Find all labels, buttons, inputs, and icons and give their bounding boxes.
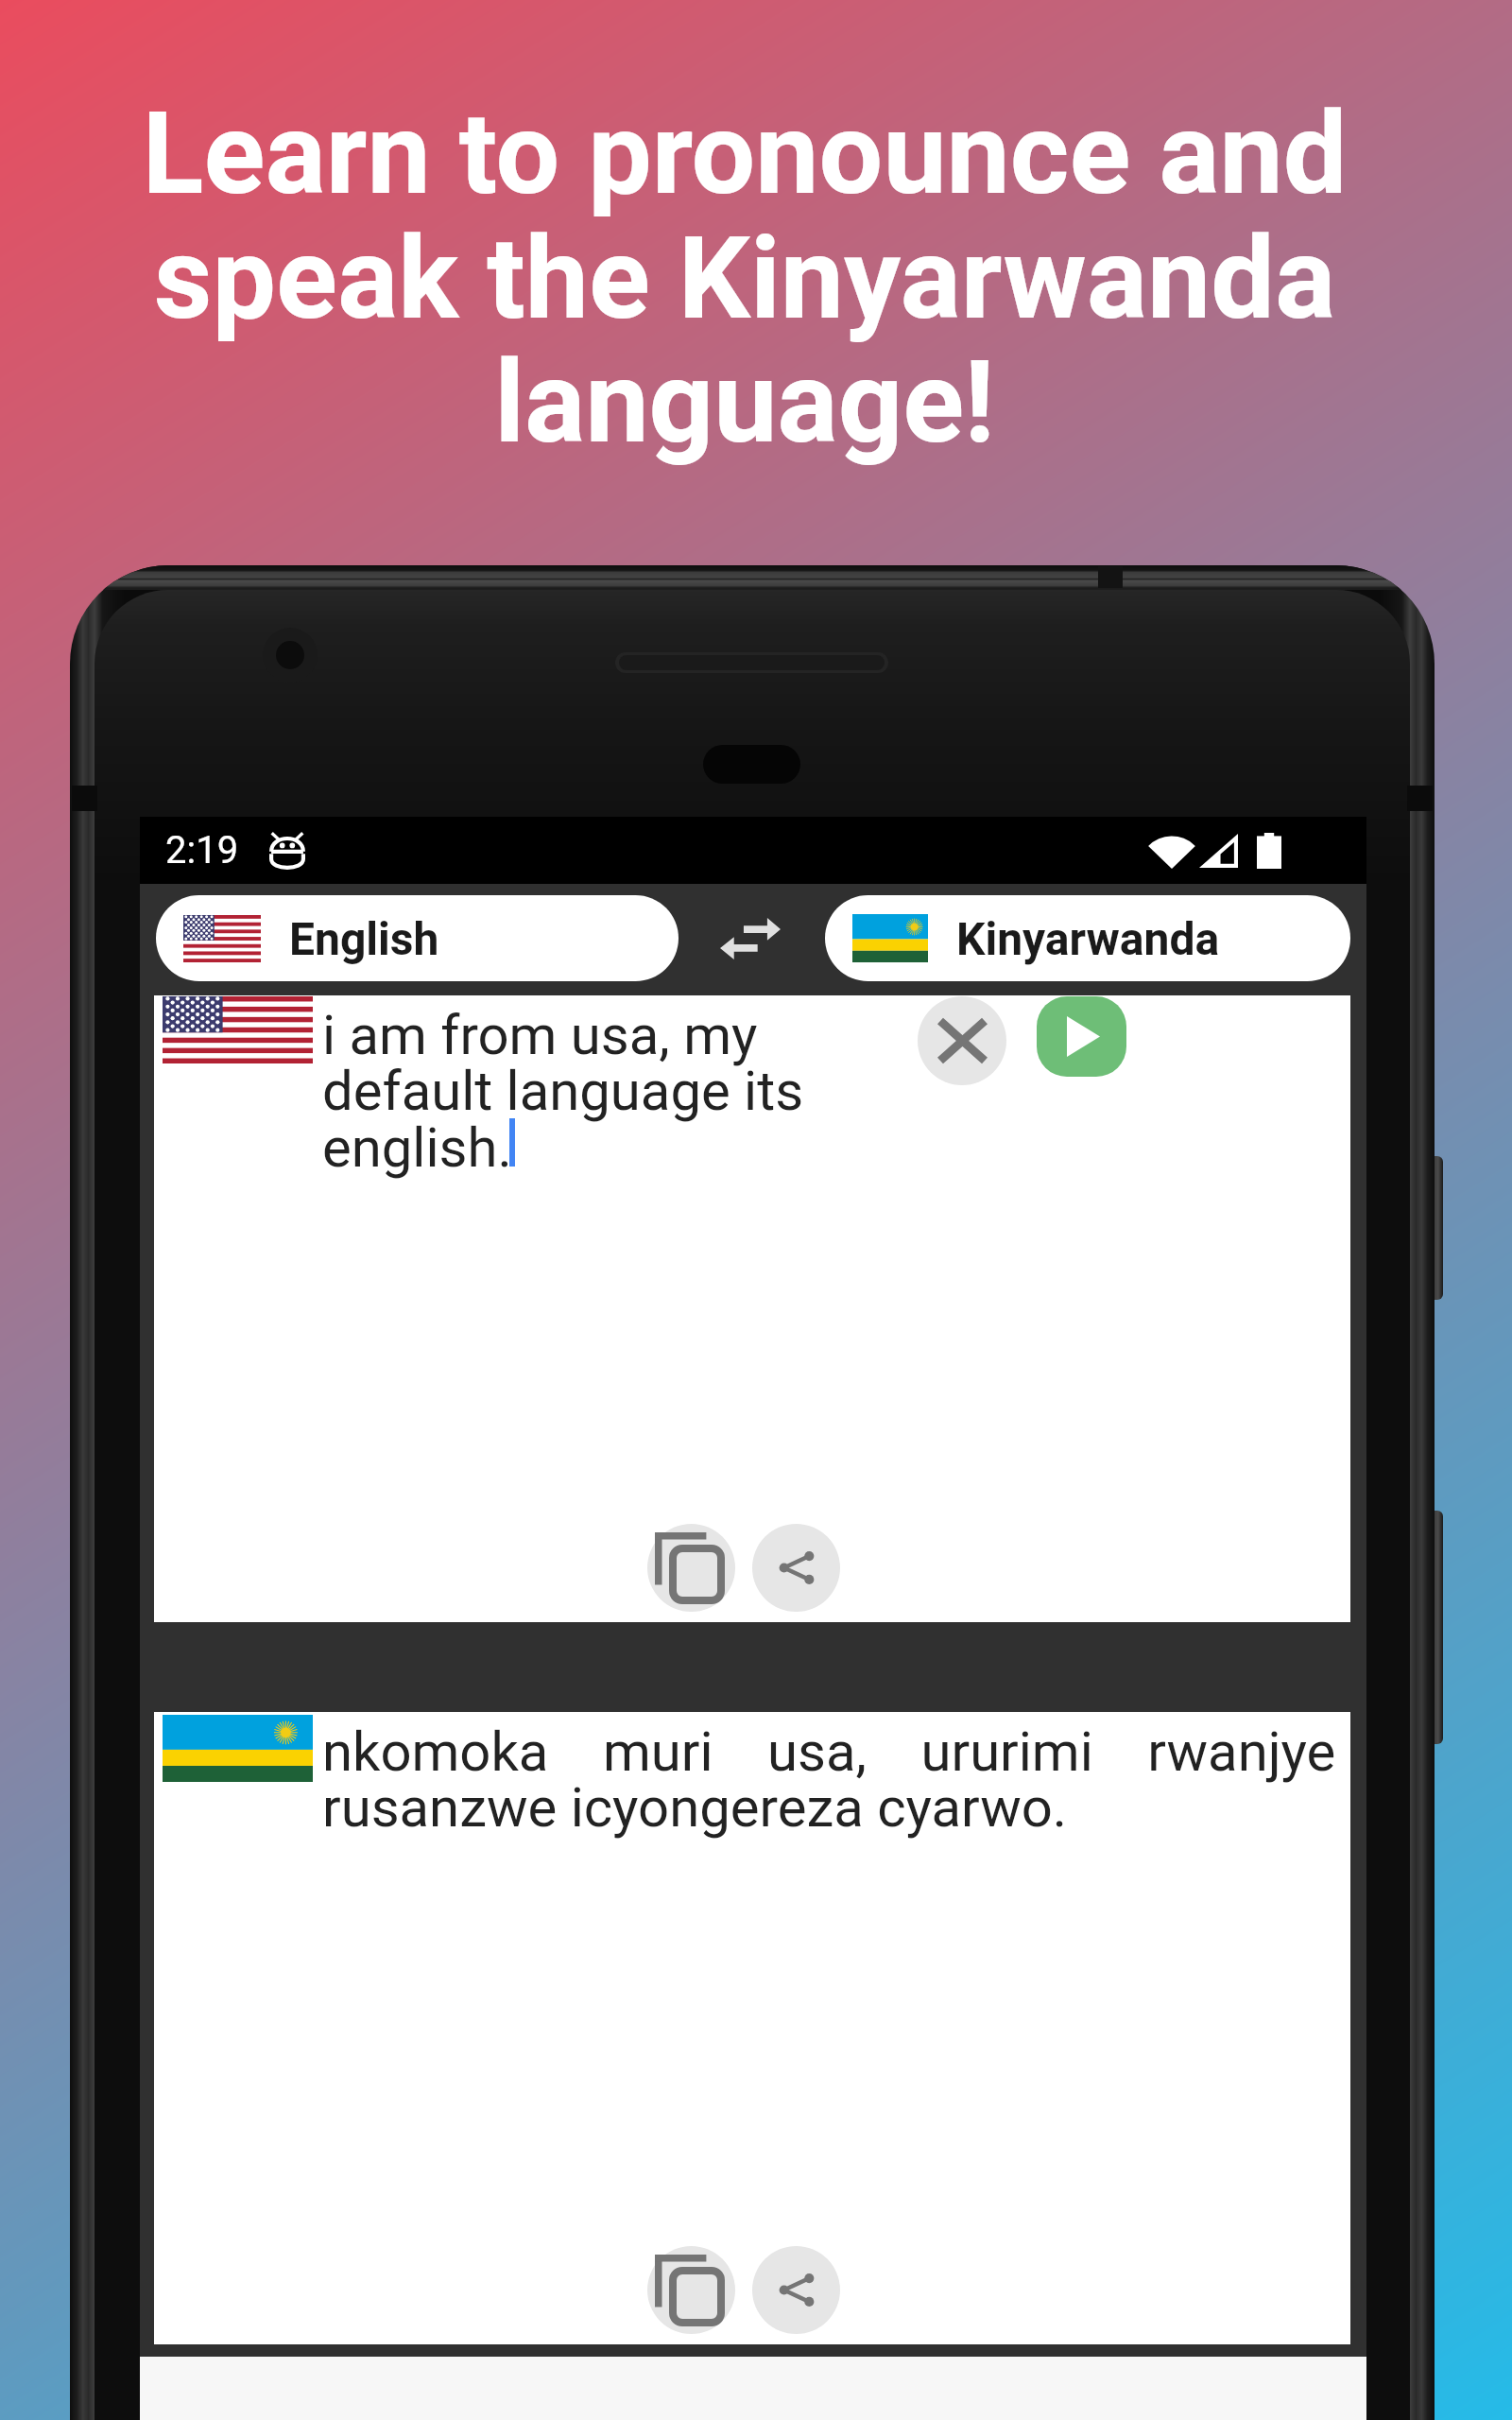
staticText: Learn to pronounce and speak the Kinyarw… <box>88 88 1401 469</box>
button[interactable]: English <box>156 895 679 981</box>
staticText: 2:19 <box>165 828 239 873</box>
button[interactable]: Kinyarwanda <box>825 895 1350 981</box>
button[interactable]: Swap languages <box>696 895 805 981</box>
button[interactable]: Copy text <box>647 1524 735 1612</box>
button[interactable]: Share <box>752 2246 840 2334</box>
button[interactable]: Clear text <box>918 996 1006 1085</box>
staticText: nkomoka muri usa, ururimi rwanjye rusanz… <box>322 1720 1336 1841</box>
button[interactable]: Share <box>752 1524 840 1612</box>
button[interactable]: Copy text <box>647 2246 735 2334</box>
button[interactable]: Play pronunciation <box>1037 996 1126 1077</box>
staticText: Kinyarwanda <box>956 912 1220 965</box>
staticText: i am from usa, my default language its e… <box>322 1003 804 1181</box>
staticText: English <box>289 912 439 965</box>
